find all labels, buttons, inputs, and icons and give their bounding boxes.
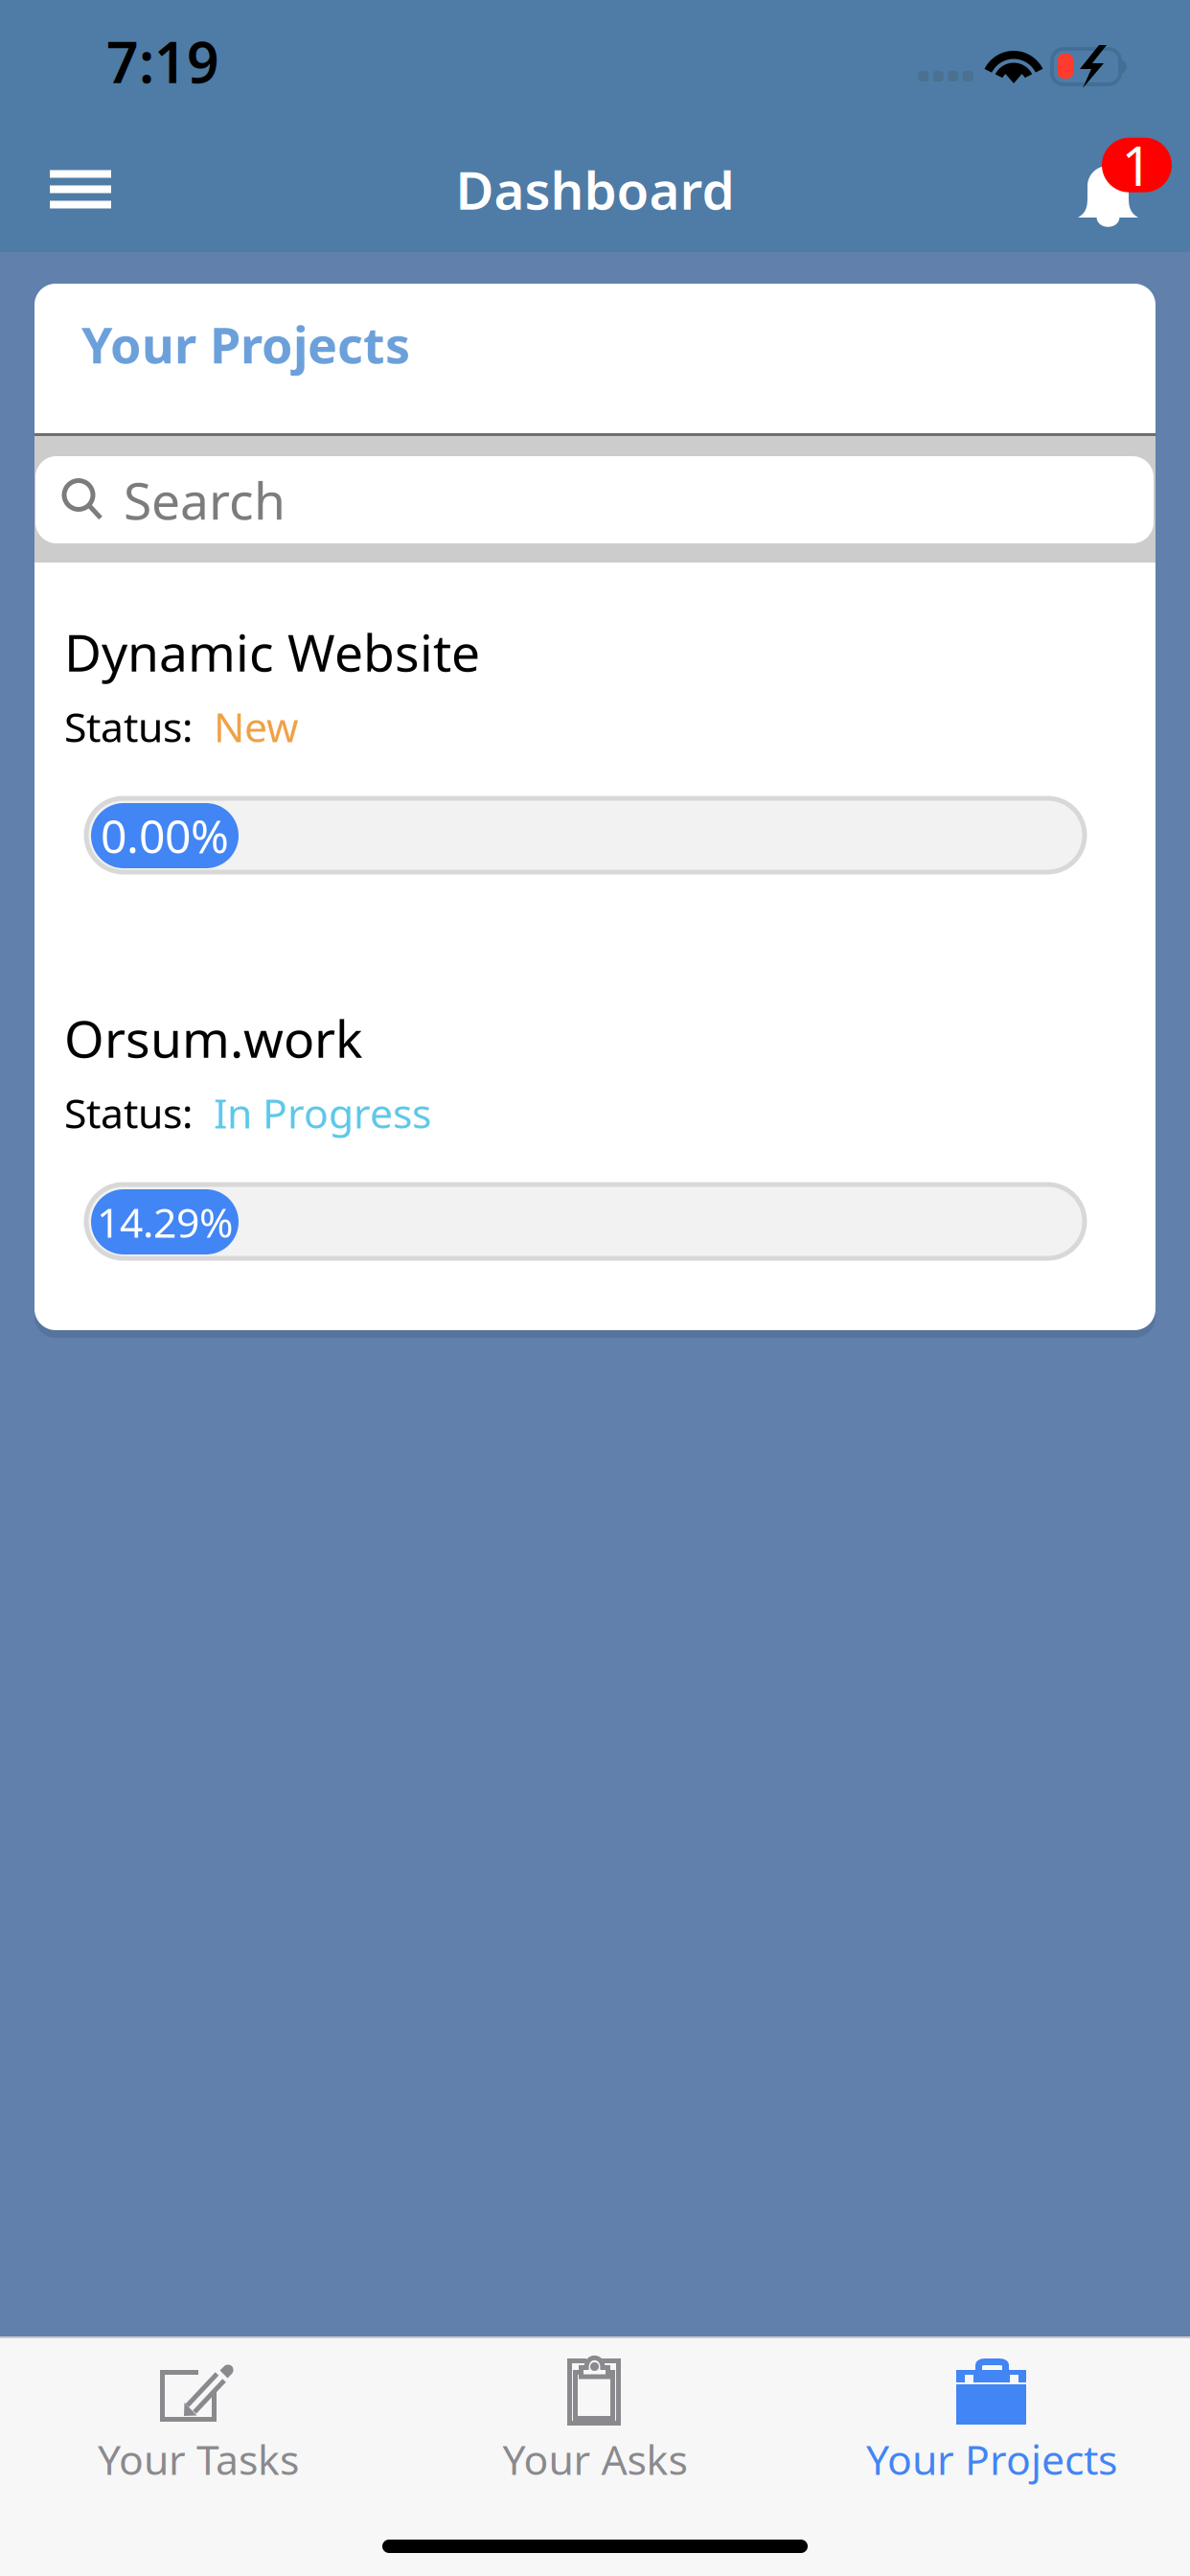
button[interactable]: Notifications bbox=[1052, 126, 1165, 252]
staticText: Search bbox=[124, 466, 286, 534]
staticText: 0.00% bbox=[101, 805, 229, 866]
staticText: Dynamic Website bbox=[64, 618, 480, 686]
staticText: Orsum.work bbox=[64, 1004, 362, 1072]
staticText: 14.29% bbox=[97, 1195, 233, 1249]
staticText: Your Projects bbox=[81, 311, 410, 377]
button[interactable]: Your Tasks bbox=[0, 2338, 397, 2478]
staticText: Status: bbox=[64, 1086, 214, 1140]
staticText: Dashboard bbox=[456, 154, 734, 224]
button[interactable]: Menu bbox=[25, 126, 136, 252]
button[interactable]: Your Projects bbox=[793, 2338, 1190, 2478]
button[interactable]: Your Asks bbox=[397, 2338, 793, 2478]
staticText: Status: bbox=[64, 699, 214, 754]
staticText: Your Projects bbox=[866, 2432, 1117, 2486]
staticText: New bbox=[214, 699, 299, 754]
staticText: In Progress bbox=[214, 1086, 431, 1140]
staticText: 7:19 bbox=[106, 24, 219, 99]
staticText: 1 bbox=[1121, 129, 1152, 201]
staticText: Your Tasks bbox=[98, 2432, 299, 2486]
staticText: Your Asks bbox=[503, 2432, 687, 2486]
